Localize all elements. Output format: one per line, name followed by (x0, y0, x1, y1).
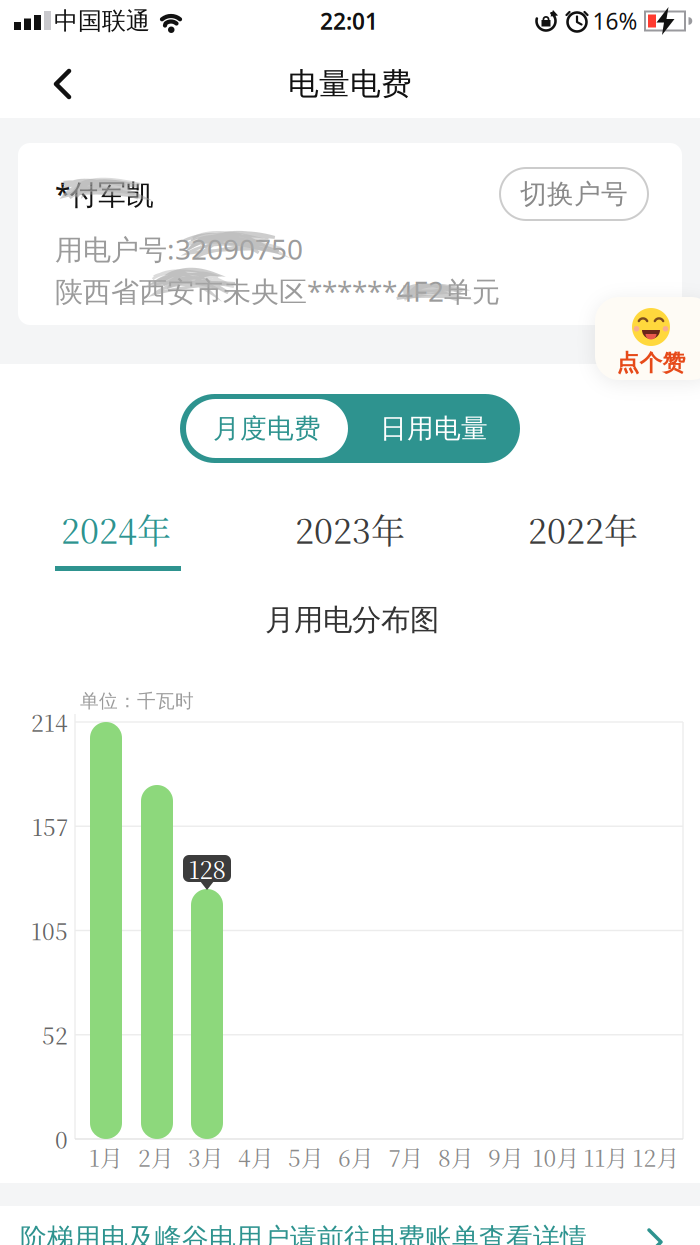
staticText: 3月 (188, 1141, 224, 1173)
staticText: 2月 (138, 1141, 174, 1173)
staticText: 2024年 (61, 505, 171, 553)
staticText: 中国联通 (54, 6, 150, 36)
staticText: 切换户号 (520, 178, 628, 210)
staticText: 0 (55, 1123, 68, 1155)
staticText: 阶梯用电及峰谷电用户请前往电费账单查看详情 (20, 1222, 587, 1245)
staticText: 6月 (338, 1141, 374, 1173)
staticText: 11月 (583, 1141, 628, 1173)
staticText: 陕西省西安市未央区******4F2单元 (55, 272, 500, 310)
staticText: 157 (32, 810, 68, 842)
staticText: 用电户号:32090750 (55, 230, 303, 268)
staticText: 9月 (488, 1141, 524, 1173)
button[interactable]: 返回 (42, 64, 82, 104)
staticText: 128 (188, 851, 225, 886)
staticText: 月度电费 (213, 412, 321, 445)
staticText: 7月 (388, 1141, 423, 1173)
staticText: 电量电费 (288, 65, 412, 103)
button[interactable]: 月度电费 (186, 399, 348, 458)
staticText: 8月 (438, 1141, 474, 1173)
button[interactable]: 切换户号 (500, 168, 648, 220)
staticText: 点个赞 (616, 349, 685, 377)
staticText: 22:01 (320, 6, 378, 36)
button[interactable]: 2022年 (488, 499, 678, 559)
staticText: 16% (592, 6, 637, 36)
staticText: 日用电量 (380, 412, 488, 445)
staticText: 4月 (238, 1141, 274, 1173)
button[interactable]: 2023年 (255, 499, 445, 559)
staticText: 214 (31, 706, 68, 738)
button[interactable]: 日用电量 (351, 394, 516, 463)
staticText: 5月 (288, 1141, 324, 1173)
button[interactable]: 点个赞 (595, 297, 700, 380)
staticText: 单位：千瓦时 (80, 689, 194, 712)
staticText: *付军凯 (55, 175, 154, 213)
staticText: 105 (31, 914, 68, 947)
button[interactable]: 阶梯用电及峰谷电用户请前往电费账单查看详情 (0, 1206, 700, 1245)
staticText: 2023年 (295, 505, 405, 553)
staticText: 月用电分布图 (265, 602, 439, 638)
staticText: 2022年 (528, 505, 638, 553)
staticText: 1月 (89, 1141, 123, 1173)
staticText: 12月 (632, 1141, 679, 1173)
button[interactable]: 2024年 (21, 499, 211, 559)
staticText: 10月 (532, 1141, 579, 1173)
staticText: 52 (42, 1018, 68, 1051)
